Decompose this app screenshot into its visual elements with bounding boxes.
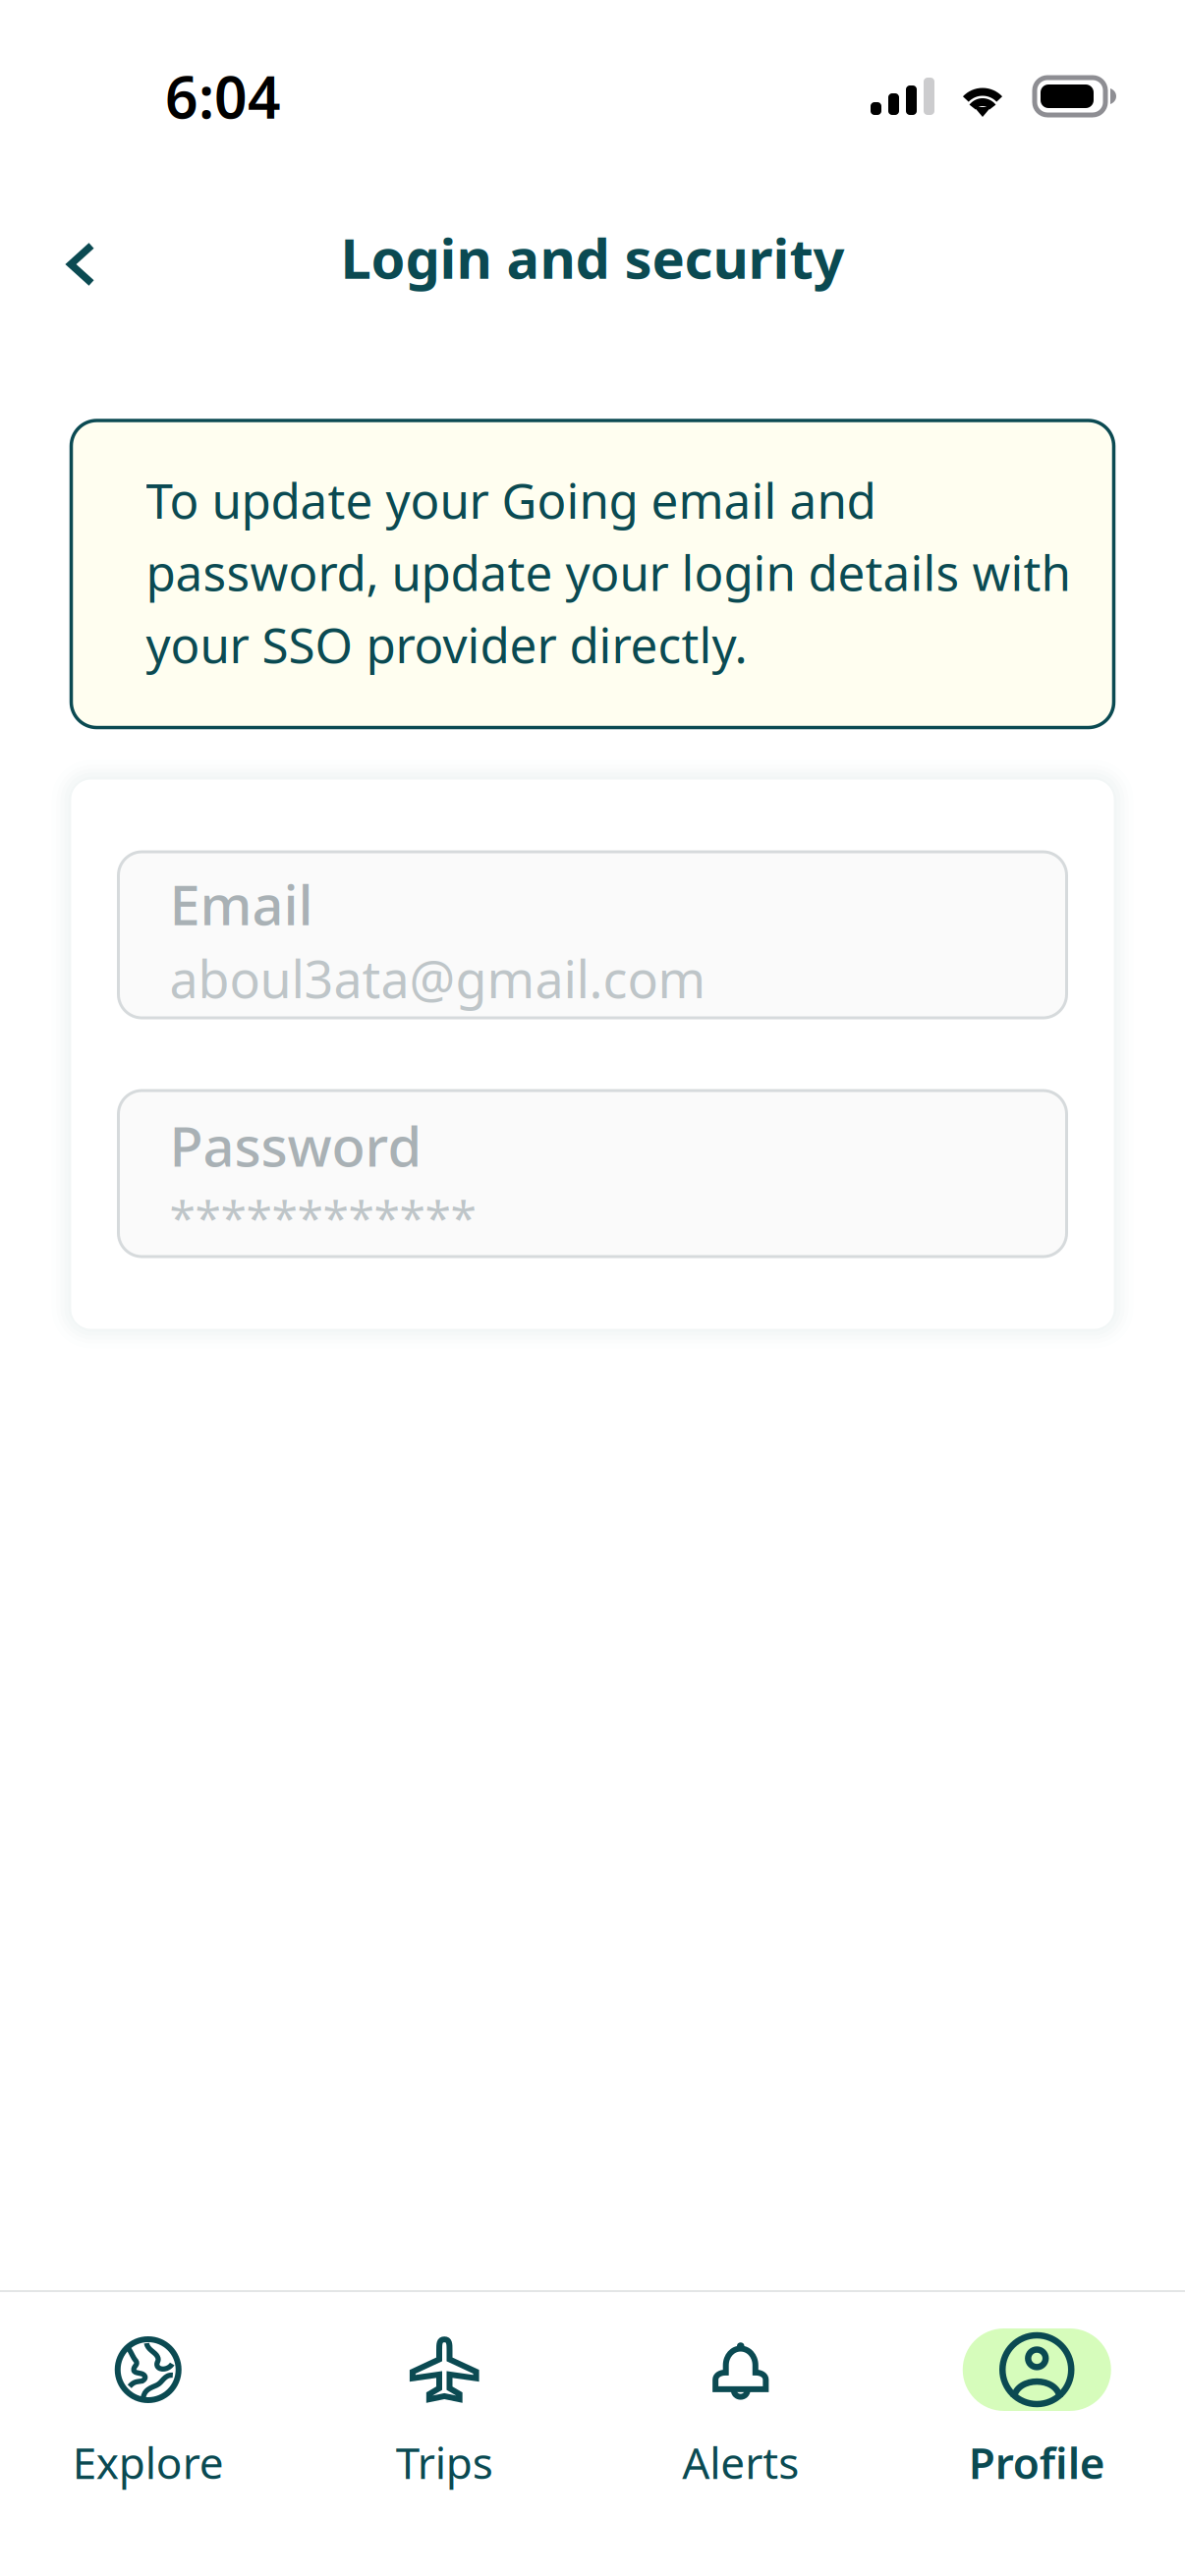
staticText: Alerts — [682, 2434, 799, 2491]
button[interactable]: Trips — [296, 2292, 592, 2503]
staticText: Password — [169, 1109, 422, 1182]
staticText: Trips — [396, 2434, 493, 2491]
staticText: ************ — [169, 1186, 476, 1248]
staticText: To update your Going email and password,… — [146, 468, 1071, 676]
staticText: aboul3ata@gmail.com — [169, 944, 706, 1012]
button[interactable]: Email — [118, 852, 1067, 1018]
staticText: Profile — [969, 2434, 1105, 2491]
staticText: Email — [169, 867, 313, 940]
button[interactable]: Explore — [0, 2292, 296, 2503]
button[interactable]: Back — [0, 206, 125, 308]
staticText: Login and security — [340, 221, 845, 294]
button[interactable]: Password — [118, 1091, 1067, 1257]
staticText: Explore — [73, 2434, 224, 2491]
staticText: 6:04 — [165, 58, 281, 134]
button[interactable]: Profile — [889, 2292, 1185, 2503]
button[interactable]: Alerts — [592, 2292, 889, 2503]
